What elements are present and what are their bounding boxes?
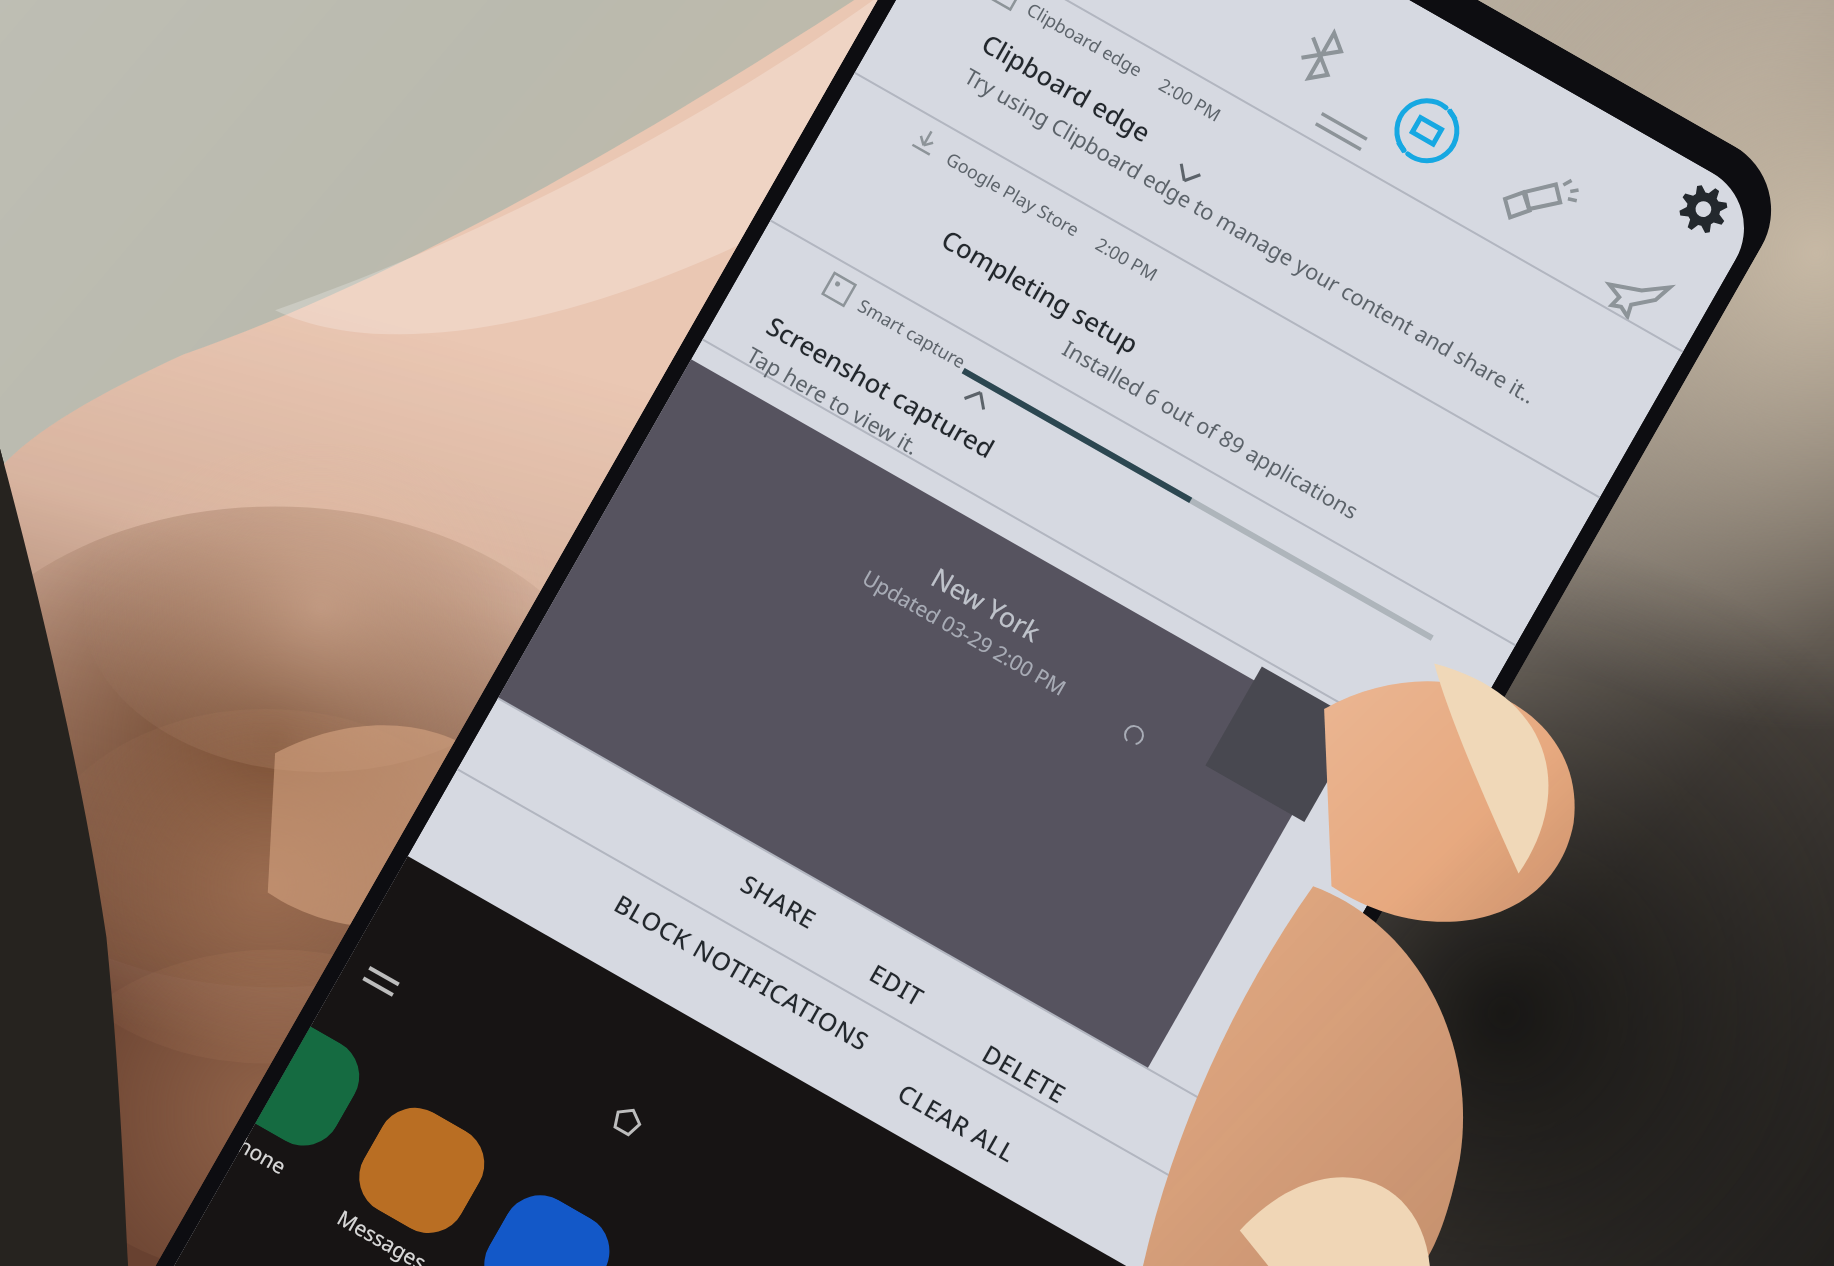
staticText: Completing setup	[936, 221, 1146, 361]
staticText: BLOCK NOTIFICATIONS	[609, 886, 876, 1058]
staticText: Smart capture	[853, 293, 971, 375]
staticText: Messages	[332, 1203, 432, 1266]
button[interactable]	[770, 73, 1600, 645]
button[interactable]: BLOCK NOTIFICATIONS	[599, 877, 886, 1067]
button[interactable]: DELETE	[967, 1027, 1083, 1120]
staticText: Installed 6 out of 89 applications	[1057, 333, 1364, 525]
staticText: Google Play Store	[942, 147, 1084, 243]
button[interactable]: CLEAR ALL	[882, 1066, 1033, 1179]
button[interactable]: Phone	[236, 1026, 373, 1193]
staticText: Phone	[236, 1132, 292, 1181]
button[interactable]: Messages	[326, 1094, 498, 1266]
button[interactable]: EDIT	[854, 946, 941, 1023]
button[interactable]: SHARE	[725, 857, 833, 945]
staticText: Try using Clipboard edge to manage your …	[959, 60, 1542, 410]
button[interactable]: Internet	[451, 1181, 623, 1266]
staticText: Clipboard edge	[1022, 0, 1148, 83]
staticText: EDIT	[864, 955, 931, 1014]
staticText: Clipboard edge	[976, 25, 1157, 149]
staticText: New York	[925, 558, 1048, 650]
button[interactable]: New York	[498, 359, 1341, 1069]
staticText: 2:00 PM	[1154, 72, 1226, 128]
staticText: CLEAR ALL	[892, 1075, 1023, 1170]
button[interactable]	[702, 220, 1516, 764]
staticText: Screenshot captured	[761, 308, 1001, 465]
button[interactable]	[854, 0, 1683, 498]
staticText: Tap here to view it.	[742, 339, 925, 461]
staticText: SHARE	[735, 866, 823, 936]
staticText: DELETE	[977, 1036, 1073, 1111]
staticText: Updated 03-29 2:00 PM	[857, 563, 1071, 703]
staticText: 2:00 PM	[1091, 232, 1162, 287]
